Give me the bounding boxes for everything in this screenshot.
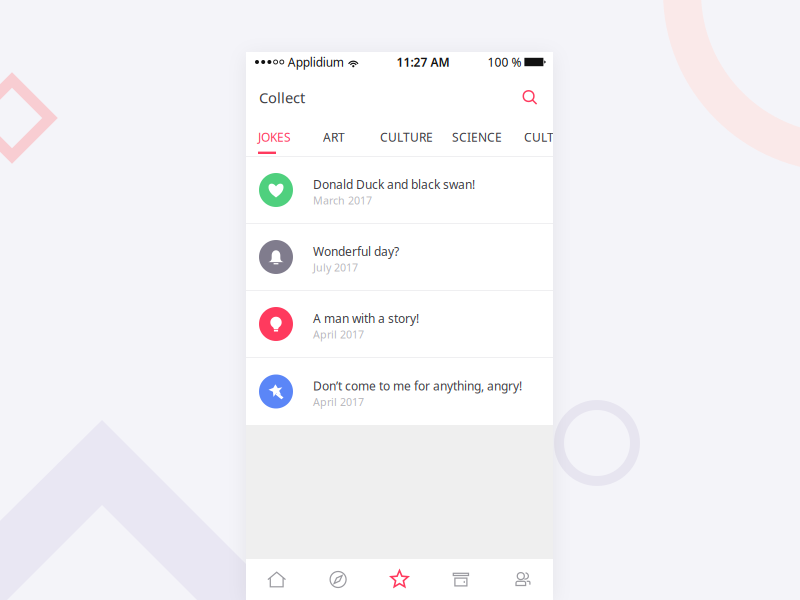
staticText: 11:27 AM	[397, 54, 450, 70]
button[interactable]: Don’t come to me for anything, angry!	[246, 358, 553, 425]
staticText: CULTURE	[524, 129, 577, 145]
button[interactable]: Donald Duck and black swan!	[246, 157, 553, 224]
staticText: April 2017	[313, 395, 364, 409]
staticText: 100 %	[487, 54, 521, 70]
staticText: SCIENCE	[452, 129, 502, 145]
button[interactable]: Collect	[369, 559, 430, 600]
button[interactable]: Search	[518, 85, 542, 109]
staticText: CULTURE	[380, 129, 433, 145]
button[interactable]: Shop	[430, 559, 492, 600]
button[interactable]: Friends	[492, 559, 553, 600]
button[interactable]: A man with a story!	[246, 291, 553, 358]
button[interactable]: CULTURE	[380, 123, 446, 156]
button[interactable]: JOKES	[258, 123, 302, 156]
staticText: ART	[323, 129, 345, 145]
staticText: JOKES	[258, 129, 291, 145]
button[interactable]: CULTURE	[524, 123, 590, 156]
staticText: July 2017	[313, 260, 358, 275]
staticText: March 2017	[313, 193, 372, 208]
button[interactable]: Home	[246, 559, 307, 600]
button[interactable]: ART	[323, 123, 353, 156]
staticText: Applidium	[288, 54, 344, 70]
staticText: April 2017	[313, 327, 364, 342]
button[interactable]: Wonderful day?	[246, 224, 553, 291]
staticText: Collect	[259, 88, 305, 107]
staticText: Don’t come to me for anything, angry!	[313, 378, 522, 394]
button[interactable]: SCIENCE	[452, 123, 514, 156]
staticText: Wonderful day?	[313, 243, 399, 259]
button[interactable]: Discover	[307, 559, 369, 600]
staticText: Donald Duck and black swan!	[313, 176, 475, 192]
staticText: A man with a story!	[313, 310, 419, 326]
